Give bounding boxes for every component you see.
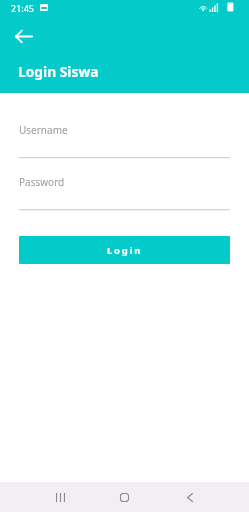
- staticText: Login Siswa: [18, 62, 99, 81]
- staticText: 21:45: [11, 2, 35, 14]
- button[interactable]: Username: [19, 120, 230, 140]
- staticText: Username: [19, 123, 68, 137]
- staticText: Password: [19, 175, 65, 189]
- button[interactable]: Back: [12, 24, 36, 48]
- staticText: Login: [107, 244, 143, 257]
- button[interactable]: Login: [19, 236, 230, 264]
- button[interactable]: Home: [110, 483, 138, 511]
- button[interactable]: Recents: [46, 483, 74, 511]
- button[interactable]: Back: [176, 483, 204, 511]
- button[interactable]: Password: [19, 172, 230, 192]
